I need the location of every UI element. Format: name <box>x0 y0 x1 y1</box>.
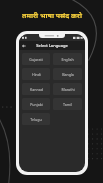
staticText: Marathi <box>61 87 75 92</box>
staticText: तमारी भाषा पसंद करो <box>22 11 82 21</box>
button[interactable]: Gujarati <box>22 53 50 65</box>
staticText: Gujarati <box>29 57 43 62</box>
staticText: Telugu <box>30 117 42 122</box>
button[interactable]: Marathi <box>53 83 82 95</box>
button[interactable]: English <box>53 53 82 65</box>
staticText: Punjabi <box>30 102 43 107</box>
staticText: Select Language <box>36 43 68 48</box>
staticText: English <box>61 57 74 62</box>
button[interactable]: Telugu <box>22 113 50 125</box>
button[interactable]: Bangla <box>53 68 82 80</box>
button[interactable]: Punjabi <box>22 98 50 110</box>
button[interactable]: Kannad <box>22 83 50 95</box>
staticText: Hindi <box>32 72 41 77</box>
button[interactable]: Hindi <box>22 68 50 80</box>
button[interactable]: Tamil <box>53 98 82 110</box>
staticText: Kannad <box>30 87 43 92</box>
button[interactable]: Back <box>20 42 27 49</box>
staticText: Tamil <box>63 102 72 107</box>
staticText: Bangla <box>62 72 74 77</box>
